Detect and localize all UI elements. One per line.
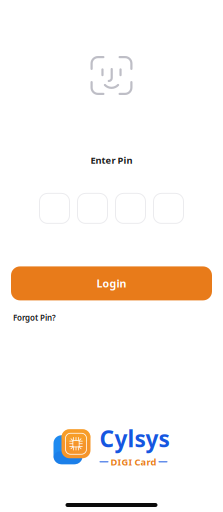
- staticText: Login: [96, 276, 126, 290]
- staticText: Enter Pin: [90, 154, 132, 166]
- staticText: Cylsys: [99, 423, 169, 454]
- staticText: Forgot Pin?: [13, 312, 56, 323]
- staticText: DIGI Card: [110, 456, 156, 468]
- button[interactable]: Login: [11, 266, 212, 300]
- button[interactable]: Forgot Pin?: [13, 312, 56, 323]
